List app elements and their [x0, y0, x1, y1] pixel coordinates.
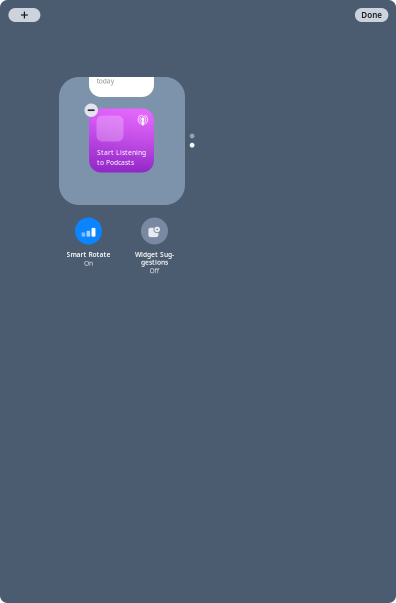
- staticText: Widget Sug-: [135, 250, 174, 259]
- staticText: On: [84, 259, 93, 268]
- button[interactable]: Remove Widget: [84, 103, 98, 117]
- staticText: Smart Rotate: [66, 250, 110, 259]
- button[interactable]: Smart Rotate: [55, 217, 121, 262]
- button[interactable]: Widget Sug-: [121, 217, 187, 271]
- staticText: Done: [361, 10, 382, 20]
- staticText: to Podcasts: [97, 158, 134, 167]
- staticText: today: [97, 76, 114, 85]
- button[interactable]: Done: [355, 8, 388, 22]
- staticText: gestions: [141, 258, 168, 267]
- staticText: Off: [149, 266, 159, 275]
- staticText: Start Listening: [97, 148, 146, 157]
- button[interactable]: Add Widget: [8, 8, 40, 22]
